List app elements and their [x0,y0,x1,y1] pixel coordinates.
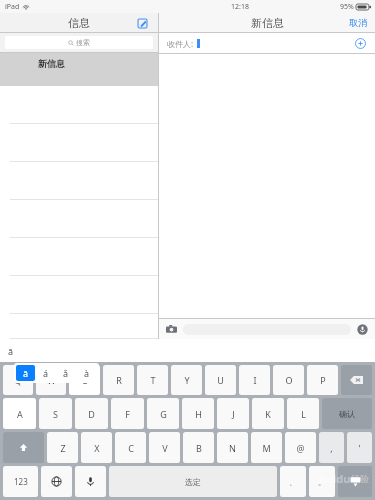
staticText: 选定 [185,477,201,487]
button[interactable]: R [103,365,134,395]
button[interactable]: Hide keyboard [338,466,372,497]
button[interactable] [0,200,158,238]
button[interactable]: à [77,365,97,381]
button[interactable]: ' [347,432,372,463]
staticText: A [17,408,23,420]
button[interactable] [0,314,158,339]
button[interactable]: Backspace [341,365,372,395]
button[interactable]: F [111,398,144,429]
staticText: ' [358,442,361,454]
staticText: ā [23,367,29,379]
button[interactable]: Shift [3,432,44,463]
button[interactable]: @ [285,432,316,463]
staticText: @ [296,442,305,454]
button[interactable]: E [69,365,100,395]
staticText: ǎ [63,367,69,379]
button[interactable]: 新信息 [0,53,158,86]
button[interactable]: ā [16,365,35,381]
staticText: 新信息 [38,58,65,69]
staticText: , [330,442,333,454]
button[interactable]: Record audio [356,323,369,336]
button[interactable]: J [217,398,249,429]
button[interactable]: A [3,398,36,429]
staticText: Z [60,442,66,454]
button[interactable]: M [251,432,282,463]
staticText: G [160,408,167,420]
staticText: F [125,408,130,420]
other: Backspace [341,365,372,395]
staticText: P [320,374,326,386]
staticText: á [43,367,49,379]
button[interactable]: 选定 [109,466,277,497]
staticText: à [84,367,90,379]
button[interactable]: X [81,432,112,463]
staticText: L [301,408,306,420]
button[interactable]: V [149,432,180,463]
staticText: 收件人: [167,38,194,49]
staticText: H [195,408,202,420]
button[interactable]: , [319,432,344,463]
button[interactable]: 、 [280,466,306,497]
button[interactable]: á [36,365,55,381]
button[interactable]: I [239,365,270,395]
staticText: 信息 [68,16,90,30]
button[interactable]: 。 [309,466,335,497]
button[interactable]: L [287,398,319,429]
button[interactable]: G [147,398,179,429]
staticText: U [217,374,224,386]
button[interactable]: New message [134,15,150,31]
button[interactable]: O [273,365,304,395]
staticText: 。 [318,477,326,487]
button[interactable]: C [115,432,146,463]
staticText: O [285,374,293,386]
button[interactable]: 搜索 [5,36,153,49]
button[interactable]: S [39,398,72,429]
staticText: 取消 [349,17,367,28]
button[interactable]: Z [47,432,78,463]
button[interactable]: 123 [3,466,38,497]
button[interactable]: Add contact [353,36,367,50]
button[interactable]: U [205,365,236,395]
staticText: I [253,374,257,386]
staticText: M [262,442,271,454]
staticText: B [196,442,202,454]
button[interactable]: ā [8,345,14,357]
button[interactable]: Dictation [75,466,106,497]
other: Shift [3,432,44,463]
staticText: N [229,442,236,454]
staticText: 确认 [339,409,355,419]
button[interactable]: 收件人: [159,33,375,53]
staticText: Baidu [319,471,351,486]
staticText: S [53,408,58,420]
button[interactable]: ǎ [56,365,76,381]
button[interactable] [0,162,158,200]
button[interactable] [0,86,158,124]
button[interactable]: P [307,365,338,395]
staticText: 新信息 [251,16,284,30]
button[interactable] [0,238,158,276]
staticText: D [88,408,95,420]
staticText: 95% [340,2,354,12]
button[interactable]: W [36,365,66,395]
button[interactable]: K [252,398,284,429]
button[interactable]: Switch keyboard [41,466,72,497]
button[interactable] [0,276,158,314]
button[interactable]: Camera [165,323,178,336]
button[interactable]: B [183,432,214,463]
button[interactable]: Y [171,365,202,395]
button[interactable]: H [182,398,214,429]
staticText: 搜索 [76,38,90,47]
button[interactable]: D [75,398,108,429]
button[interactable]: Q [3,365,33,395]
button[interactable]: N [217,432,248,463]
staticText: X [94,442,100,454]
button[interactable]: T [137,365,168,395]
staticText: 经验 [351,473,369,484]
button[interactable]: 确认 [322,398,372,429]
staticText: J [232,408,235,420]
button[interactable]: 取消 [347,15,369,30]
staticText: iPad [5,2,20,12]
staticText: K [265,408,271,420]
button[interactable] [0,124,158,162]
